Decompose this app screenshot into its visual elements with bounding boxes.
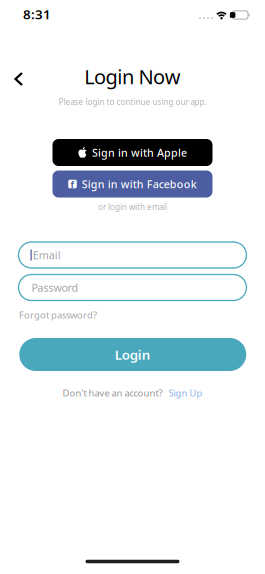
button[interactable]: Forgot password? bbox=[19, 309, 97, 321]
button[interactable]: Password bbox=[18, 274, 246, 300]
button[interactable]: f bbox=[52, 170, 212, 197]
staticText: Sign in with Facebook bbox=[82, 177, 197, 191]
staticText: Don't have an account? bbox=[62, 387, 162, 399]
staticText: Forgot password? bbox=[19, 309, 97, 321]
button[interactable]: Sign in with Apple bbox=[52, 139, 212, 166]
staticText: Sign in with Apple bbox=[92, 145, 187, 160]
button[interactable]: Sign Up bbox=[168, 387, 202, 399]
button[interactable]: Login bbox=[19, 338, 246, 371]
button[interactable]: Email bbox=[18, 242, 246, 268]
staticText: or login with email bbox=[98, 202, 167, 212]
staticText: Password bbox=[31, 280, 78, 295]
staticText: 8:31 bbox=[23, 5, 51, 23]
staticText: f bbox=[70, 178, 74, 191]
staticText: Sign Up bbox=[168, 387, 202, 399]
staticText: Login bbox=[115, 346, 151, 363]
button[interactable]: Back bbox=[7, 66, 29, 92]
staticText: Email bbox=[33, 248, 61, 262]
staticText: Please login to continue using our app. bbox=[58, 97, 206, 107]
staticText: Login Now bbox=[84, 63, 181, 90]
